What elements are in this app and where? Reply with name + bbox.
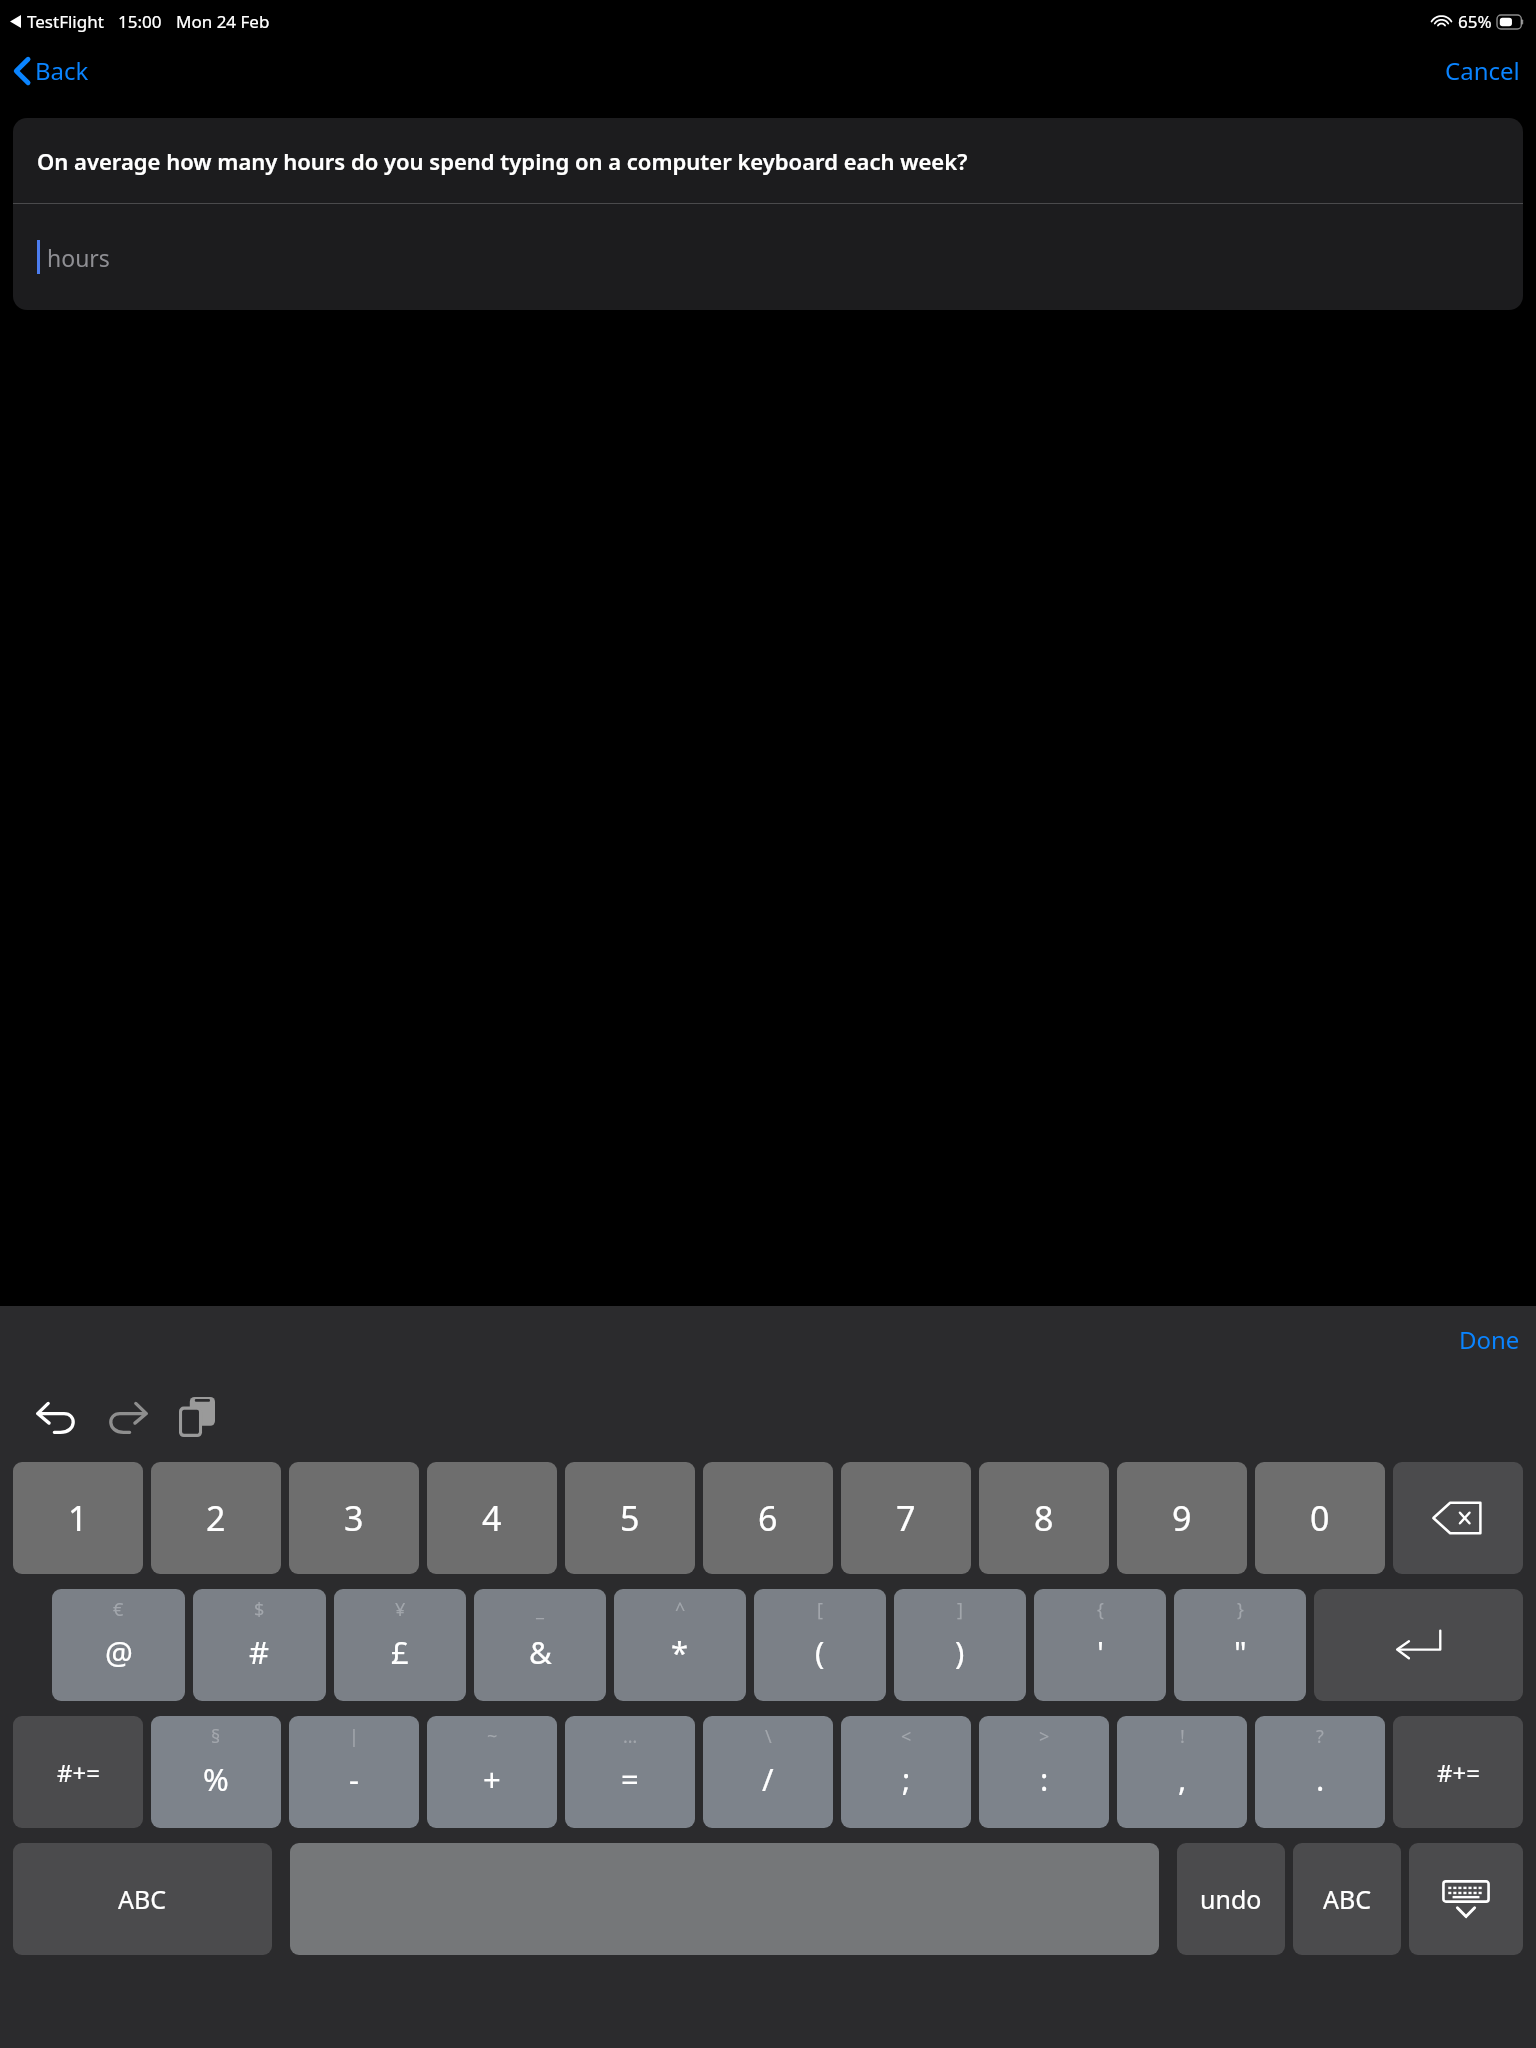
button[interactable]: €: [52, 1589, 185, 1701]
staticText: }: [1237, 1597, 1244, 1622]
staticText: 2: [206, 1495, 226, 1541]
staticText: #+=: [1437, 1756, 1480, 1789]
staticText: {: [1097, 1597, 1104, 1622]
button[interactable]: Return: [1314, 1589, 1523, 1701]
button[interactable]: 0: [1255, 1462, 1385, 1574]
staticText: *: [671, 1631, 689, 1673]
staticText: Back: [35, 54, 89, 87]
button[interactable]: Cancel: [1429, 46, 1536, 95]
staticText: #+=: [57, 1756, 100, 1789]
staticText: ;: [902, 1758, 911, 1800]
staticText: 6: [758, 1495, 778, 1541]
staticText: :: [1040, 1758, 1049, 1800]
button[interactable]: undo: [1177, 1843, 1285, 1955]
staticText: ^: [675, 1597, 686, 1622]
button[interactable]: 7: [841, 1462, 971, 1574]
staticText: Done: [1459, 1323, 1520, 1356]
staticText: >: [1039, 1724, 1050, 1749]
staticText: hours: [47, 242, 110, 273]
button[interactable]: ¥: [334, 1589, 466, 1701]
button[interactable]: #+=: [13, 1716, 143, 1828]
staticText: On average how many hours do you spend t…: [37, 146, 968, 176]
staticText: 9: [1172, 1495, 1192, 1541]
staticText: …: [623, 1724, 638, 1749]
button[interactable]: ABC: [13, 1843, 272, 1955]
staticText: -: [349, 1758, 359, 1800]
button[interactable]: Backspace: [1393, 1462, 1523, 1574]
staticText: §: [211, 1724, 221, 1749]
staticText: ]: [957, 1597, 963, 1622]
staticText: &: [529, 1631, 552, 1673]
staticText: 65%: [1458, 10, 1492, 33]
staticText: .: [1316, 1758, 1325, 1800]
button[interactable]: !: [1117, 1716, 1247, 1828]
button[interactable]: Hide keyboard: [1409, 1843, 1523, 1955]
staticText: ABC: [1323, 1882, 1372, 1916]
staticText: %: [203, 1758, 229, 1800]
staticText: 4: [482, 1495, 502, 1541]
button[interactable]: _: [474, 1589, 606, 1701]
button[interactable]: …: [565, 1716, 695, 1828]
button[interactable]: ~: [427, 1716, 557, 1828]
staticText: 7: [896, 1495, 916, 1541]
staticText: ): [955, 1631, 965, 1673]
staticText: (: [815, 1631, 825, 1673]
button[interactable]: Redo: [96, 1386, 158, 1448]
button[interactable]: Back: [0, 48, 101, 93]
staticText: undo: [1200, 1882, 1262, 1916]
staticText: \: [765, 1724, 772, 1749]
button[interactable]: 9: [1117, 1462, 1247, 1574]
staticText: €: [113, 1597, 124, 1622]
button[interactable]: ?: [1255, 1716, 1385, 1828]
button[interactable]: >: [979, 1716, 1109, 1828]
staticText: Cancel: [1445, 54, 1520, 87]
staticText: 5: [620, 1495, 640, 1541]
button[interactable]: $: [193, 1589, 326, 1701]
staticText: +: [483, 1758, 501, 1800]
staticText: =: [621, 1758, 639, 1800]
button[interactable]: hours: [13, 204, 1523, 310]
button[interactable]: §: [151, 1716, 281, 1828]
button[interactable]: Done: [1443, 1315, 1536, 1364]
button[interactable]: 4: [427, 1462, 557, 1574]
staticText: ': [1097, 1631, 1104, 1673]
staticText: |: [349, 1724, 359, 1749]
button[interactable]: Paste: [166, 1386, 228, 1448]
staticText: ABC: [118, 1882, 167, 1916]
button[interactable]: 2: [151, 1462, 281, 1574]
button[interactable]: ^: [614, 1589, 746, 1701]
button[interactable]: <: [841, 1716, 971, 1828]
staticText: ,: [1178, 1758, 1187, 1800]
staticText: 3: [344, 1495, 364, 1541]
button[interactable]: On average how many hours do you spend t…: [13, 118, 1523, 203]
button[interactable]: |: [289, 1716, 419, 1828]
staticText: [: [817, 1597, 823, 1622]
staticText: <: [901, 1724, 912, 1749]
button[interactable]: }: [1174, 1589, 1306, 1701]
button[interactable]: 5: [565, 1462, 695, 1574]
staticText: 15:00: [118, 10, 162, 33]
button[interactable]: 1: [13, 1462, 143, 1574]
staticText: ?: [1316, 1724, 1324, 1749]
staticText: /: [762, 1758, 774, 1800]
staticText: ~: [487, 1724, 498, 1749]
staticText: _: [536, 1597, 544, 1622]
staticText: ": [1234, 1631, 1247, 1673]
button[interactable]: [: [754, 1589, 886, 1701]
button[interactable]: Undo: [26, 1386, 88, 1448]
button[interactable]: ]: [894, 1589, 1026, 1701]
button[interactable]: 6: [703, 1462, 833, 1574]
staticText: ¥: [395, 1597, 406, 1622]
staticText: 8: [1034, 1495, 1054, 1541]
button[interactable]: ABC: [1293, 1843, 1401, 1955]
staticText: #: [249, 1631, 270, 1673]
button[interactable]: 3: [289, 1462, 419, 1574]
button[interactable]: \: [703, 1716, 833, 1828]
button[interactable]: 8: [979, 1462, 1109, 1574]
staticText: Mon 24 Feb: [176, 10, 270, 33]
staticText: £: [391, 1631, 409, 1673]
button[interactable]: #+=: [1393, 1716, 1523, 1828]
button[interactable]: {: [1034, 1589, 1166, 1701]
staticText: @: [105, 1631, 133, 1673]
